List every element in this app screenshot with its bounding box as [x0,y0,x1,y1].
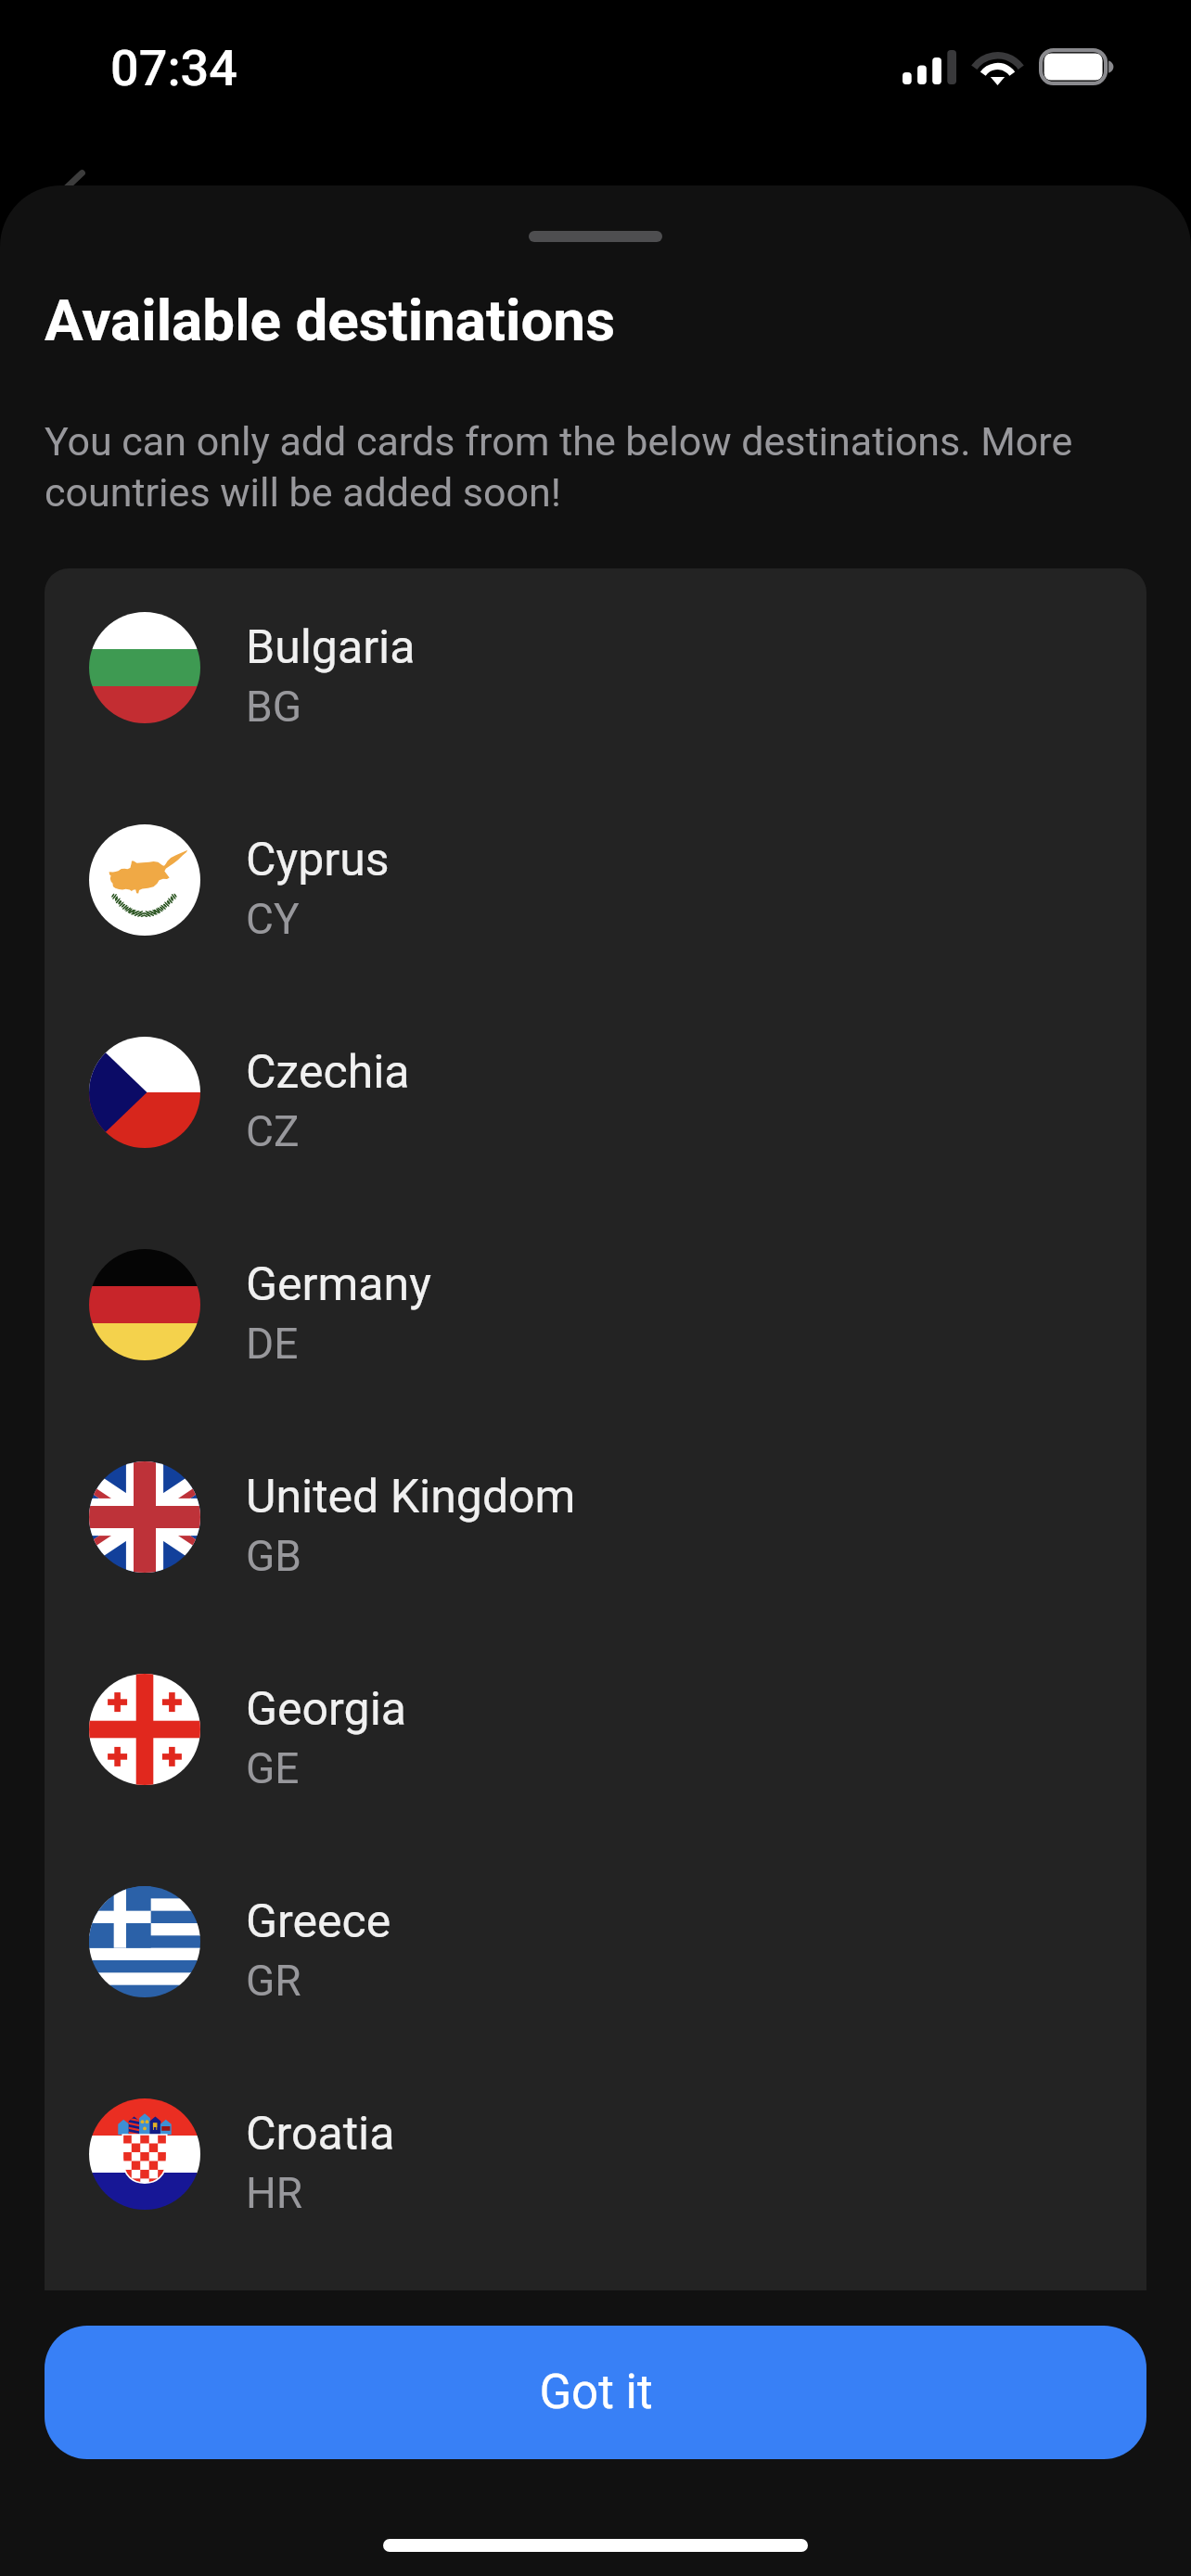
staticText: Croatia [246,2107,395,2162]
staticText: CZ [246,1106,300,1156]
staticText: CY [246,894,300,944]
staticText: 07:34 [110,39,238,97]
staticText: Got it [539,2365,653,2420]
button[interactable]: Germany [45,1249,1146,1461]
staticText: GB [246,1531,301,1581]
staticText: Germany [246,1257,431,1312]
button[interactable]: Czechia [45,1037,1146,1249]
staticText: Available destinations [45,287,615,354]
button[interactable]: Cyprus [45,824,1146,1037]
staticText: HR [246,2168,303,2218]
button[interactable]: Greece [45,1886,1146,2098]
staticText: GE [246,1743,300,1793]
button[interactable]: United Kingdom [45,1461,1146,1674]
staticText: United Kingdom [246,1470,576,1524]
staticText: Georgia [246,1682,406,1737]
button[interactable]: Bulgaria [45,612,1146,824]
staticText: Cyprus [246,833,390,887]
staticText: GR [246,1956,301,2006]
button[interactable]: Georgia [45,1674,1146,1886]
staticText: BG [246,682,301,732]
button[interactable]: Close [45,132,111,198]
staticText: Bulgaria [246,620,416,675]
staticText: DE [246,1319,299,1369]
staticText: Czechia [246,1045,410,1100]
button[interactable]: Got it [45,2326,1146,2459]
staticText: Greece [246,1894,391,1949]
staticText: You can only add cards from the below de… [45,418,1125,516]
button[interactable]: Croatia [45,2098,1146,2290]
